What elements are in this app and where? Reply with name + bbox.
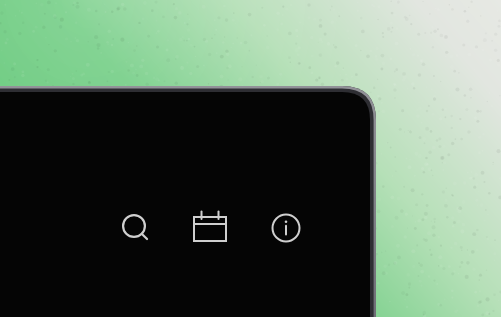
button[interactable]: Search (110, 202, 158, 250)
button[interactable]: Calendar (186, 204, 234, 252)
button[interactable]: Info (262, 204, 310, 252)
